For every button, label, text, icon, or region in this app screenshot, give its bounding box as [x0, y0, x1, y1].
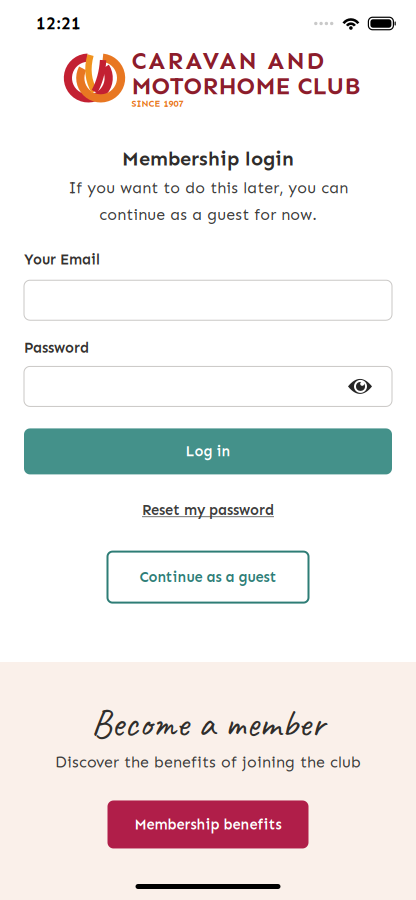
staticText: Reset my password — [142, 501, 274, 519]
staticText: Membership benefits — [134, 816, 281, 833]
button[interactable]: Log in — [24, 428, 392, 474]
staticText: Discover the benefits of joining the clu… — [55, 753, 361, 771]
button[interactable]: Password — [24, 366, 392, 406]
staticText: If you want to do this later, you can co… — [68, 178, 348, 224]
staticText: 12:21 — [36, 13, 81, 34]
staticText: Password — [24, 339, 89, 356]
button[interactable]: Membership benefits — [107, 800, 308, 848]
staticText: Continue as a guest — [139, 568, 276, 586]
staticText: SINCE 1907 — [131, 98, 183, 109]
staticText: Your Email — [24, 251, 100, 268]
button[interactable]: Show password — [348, 378, 392, 395]
button[interactable]: Reset my password — [142, 501, 274, 519]
button[interactable]: Continue as a guest — [107, 552, 308, 603]
button[interactable]: Your Email — [24, 280, 392, 320]
staticText: MOTORHOME CLUB — [131, 72, 360, 100]
staticText: Become a member — [91, 699, 325, 748]
staticText: CARAVAN AND — [131, 47, 324, 75]
staticText: Log in — [185, 443, 230, 460]
staticText: Membership login — [122, 147, 294, 170]
